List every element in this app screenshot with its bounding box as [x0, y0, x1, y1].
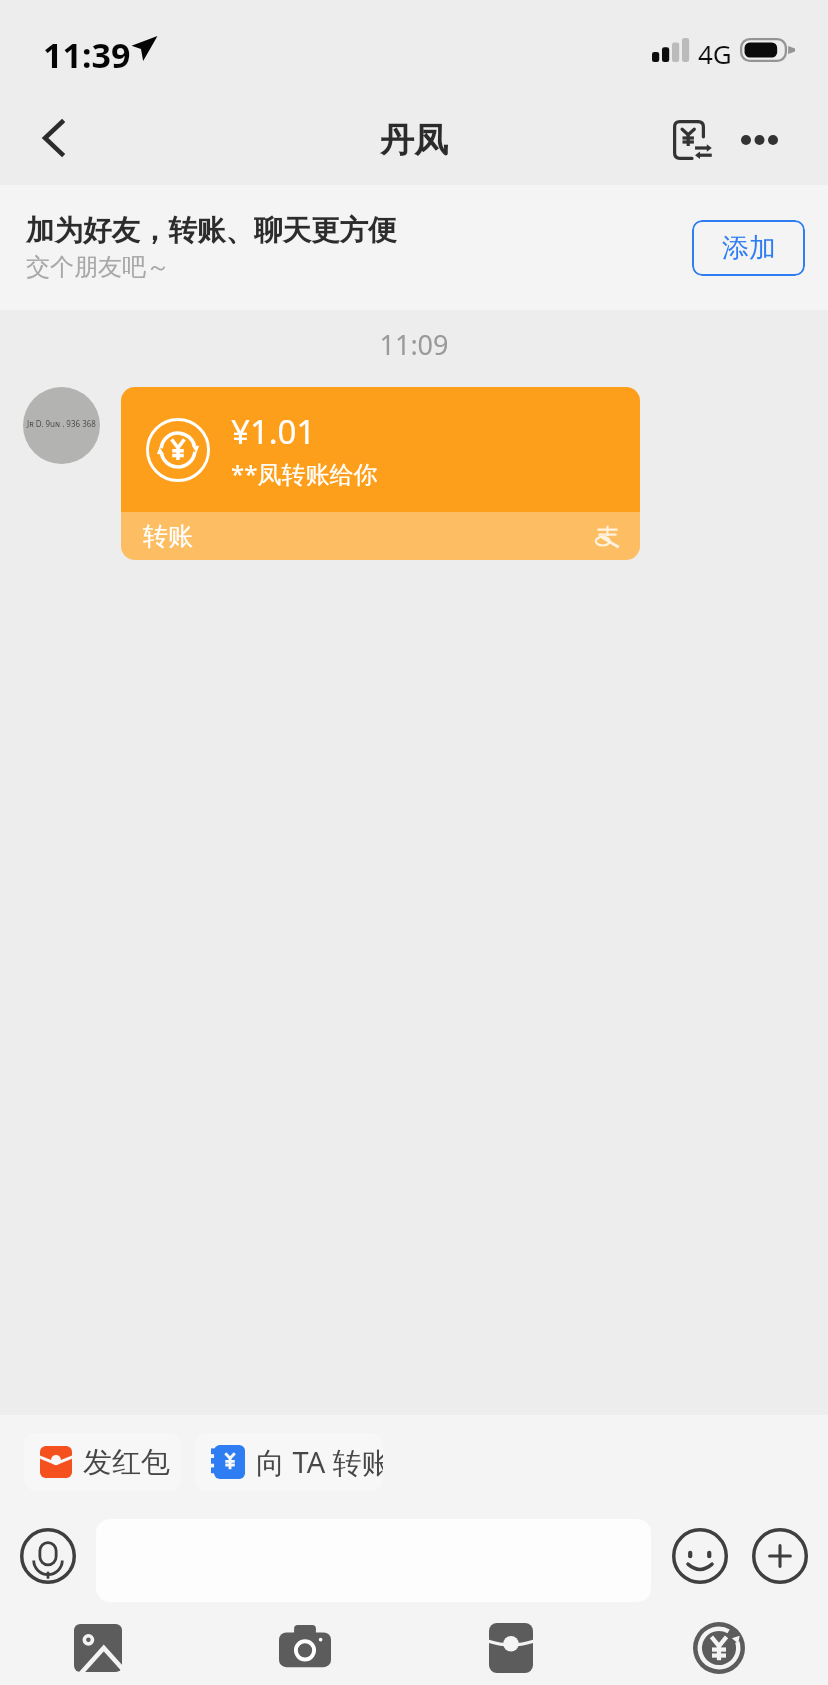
staticText: 11:39 — [43, 32, 131, 78]
staticText: 向 TA 转账 — [256, 1442, 383, 1482]
button[interactable]: Camera — [259, 1610, 351, 1685]
staticText: 4G — [698, 36, 732, 71]
staticText: 交个朋友吧～ — [26, 252, 170, 282]
staticText: **凤转账给你 — [231, 457, 378, 490]
staticText: ¥1.01 — [231, 409, 316, 454]
button[interactable]: 发红包 — [24, 1433, 181, 1491]
button[interactable]: Voice message — [5, 1513, 91, 1599]
button[interactable]: Transfer — [652, 100, 732, 180]
staticText: 11:09 — [0, 326, 828, 363]
staticText: Jʀ D. 9uɴ . 936 368 — [27, 418, 96, 429]
staticText: 发红包 — [83, 1444, 170, 1481]
button[interactable]: 添加 — [692, 220, 805, 276]
button[interactable]: More options — [737, 1513, 823, 1599]
button[interactable]: Back — [10, 95, 96, 181]
button[interactable]: Transfer — [673, 1610, 765, 1685]
button[interactable]: Emoji — [657, 1513, 743, 1599]
button[interactable]: Red packet — [465, 1610, 557, 1685]
button[interactable]: 向 TA 转账 — [195, 1433, 383, 1491]
button[interactable]: ¥1.01 — [121, 387, 640, 560]
button[interactable]: Avatar — [23, 387, 100, 464]
button[interactable]: More — [719, 100, 799, 180]
staticText: 转账 — [143, 521, 193, 552]
staticText: 丹凤 — [380, 119, 448, 162]
button[interactable]: Photos — [52, 1610, 144, 1685]
staticText: 加为好友，转账、聊天更方便 — [26, 213, 397, 249]
staticText: 添加 — [722, 231, 776, 265]
